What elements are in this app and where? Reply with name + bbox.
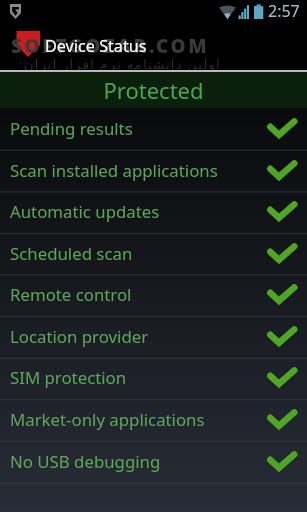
staticText: Protected [103,75,204,105]
staticText: SOFTGOZAR.COM [11,33,210,59]
staticText: SIM protection [10,366,267,389]
button[interactable]: SIM protection [0,357,307,399]
button[interactable]: Market-only applications [0,399,307,441]
staticText: Remote control [10,283,267,306]
staticText: Device Status [45,35,147,57]
button[interactable]: Device Status [0,22,307,70]
staticText: Scan installed applications [10,159,267,182]
staticText: Location provider [10,325,267,348]
staticText: اولین دانشنامه نرم افزار ایران [24,55,221,73]
staticText: Scheduled scan [10,242,267,265]
staticText: 2:57 [268,0,300,22]
button[interactable]: Automatic updates [0,191,307,233]
button[interactable]: Scan installed applications [0,150,307,192]
staticText: Market-only applications [10,408,267,431]
button[interactable]: No USB debugging [0,441,307,483]
button[interactable]: Scheduled scan [0,233,307,275]
staticText: Automatic updates [10,200,267,223]
staticText: Pending results [10,117,267,140]
staticText: No USB debugging [10,450,267,473]
button[interactable]: Pending results [0,108,307,150]
other: Security notification [10,4,21,19]
button[interactable]: Remote control [0,274,307,316]
button[interactable]: Location provider [0,316,307,358]
